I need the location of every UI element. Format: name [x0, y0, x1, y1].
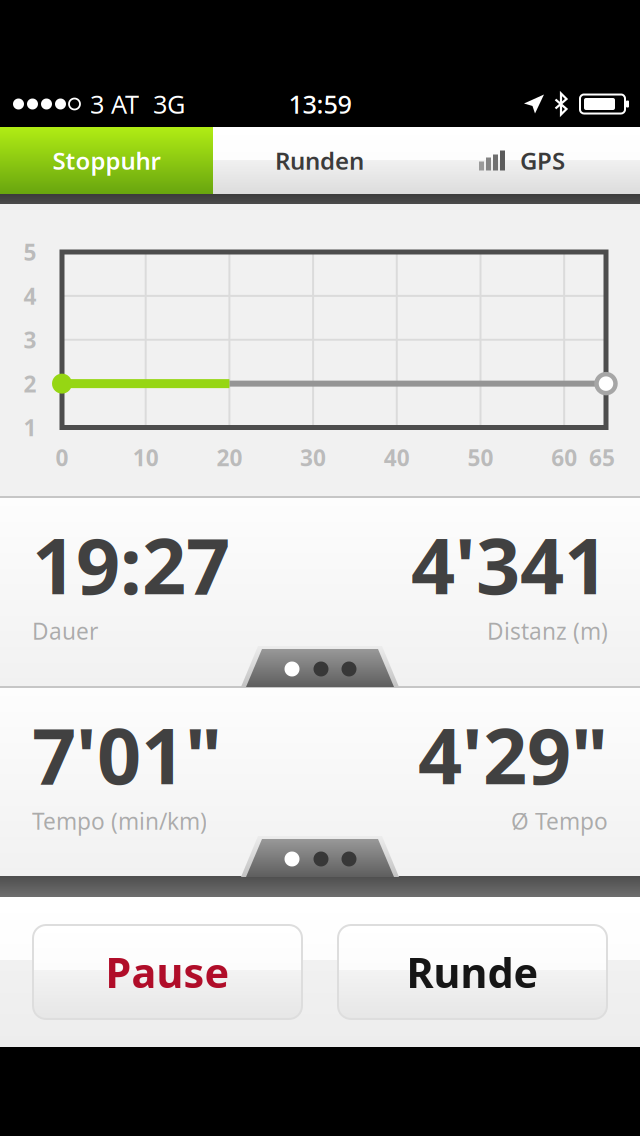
staticText: 4	[23, 281, 36, 311]
button[interactable]: Runde	[338, 925, 607, 1019]
staticText: 5	[23, 237, 36, 267]
staticText: Tempo (min/km)	[32, 806, 207, 836]
staticText: Dauer	[32, 616, 98, 646]
staticText: 2	[23, 369, 36, 399]
staticText: 65	[589, 442, 615, 472]
staticText: Runden	[275, 145, 364, 176]
staticText: Ø Tempo	[511, 806, 608, 836]
staticText: 0	[55, 442, 68, 472]
button[interactable]: Pause	[33, 925, 302, 1019]
staticText: 13:59	[288, 87, 351, 121]
staticText: 10	[133, 442, 159, 472]
button[interactable]: Runden	[213, 127, 426, 194]
staticText: 50	[467, 442, 493, 472]
staticText: 1	[23, 412, 36, 442]
staticText: Runde	[406, 945, 538, 999]
staticText: 4'29"	[418, 703, 608, 806]
staticText: 40	[384, 442, 410, 472]
staticText: GPS	[520, 145, 565, 176]
staticText: Distanz (m)	[487, 616, 608, 646]
staticText: 60	[551, 442, 577, 472]
staticText: 19:27	[32, 513, 230, 616]
staticText: 30	[300, 442, 326, 472]
staticText: 4'341	[411, 513, 608, 616]
staticText: 20	[216, 442, 242, 472]
button[interactable]: GPS	[426, 127, 640, 194]
staticText: 7'01"	[32, 703, 222, 806]
staticText: Stoppuhr	[52, 145, 160, 176]
staticText: 3 AT	[90, 87, 139, 121]
staticText: 3	[23, 325, 36, 355]
staticText: 3G	[153, 87, 185, 121]
staticText: Pause	[105, 945, 229, 999]
button[interactable]: Stoppuhr	[0, 127, 213, 194]
